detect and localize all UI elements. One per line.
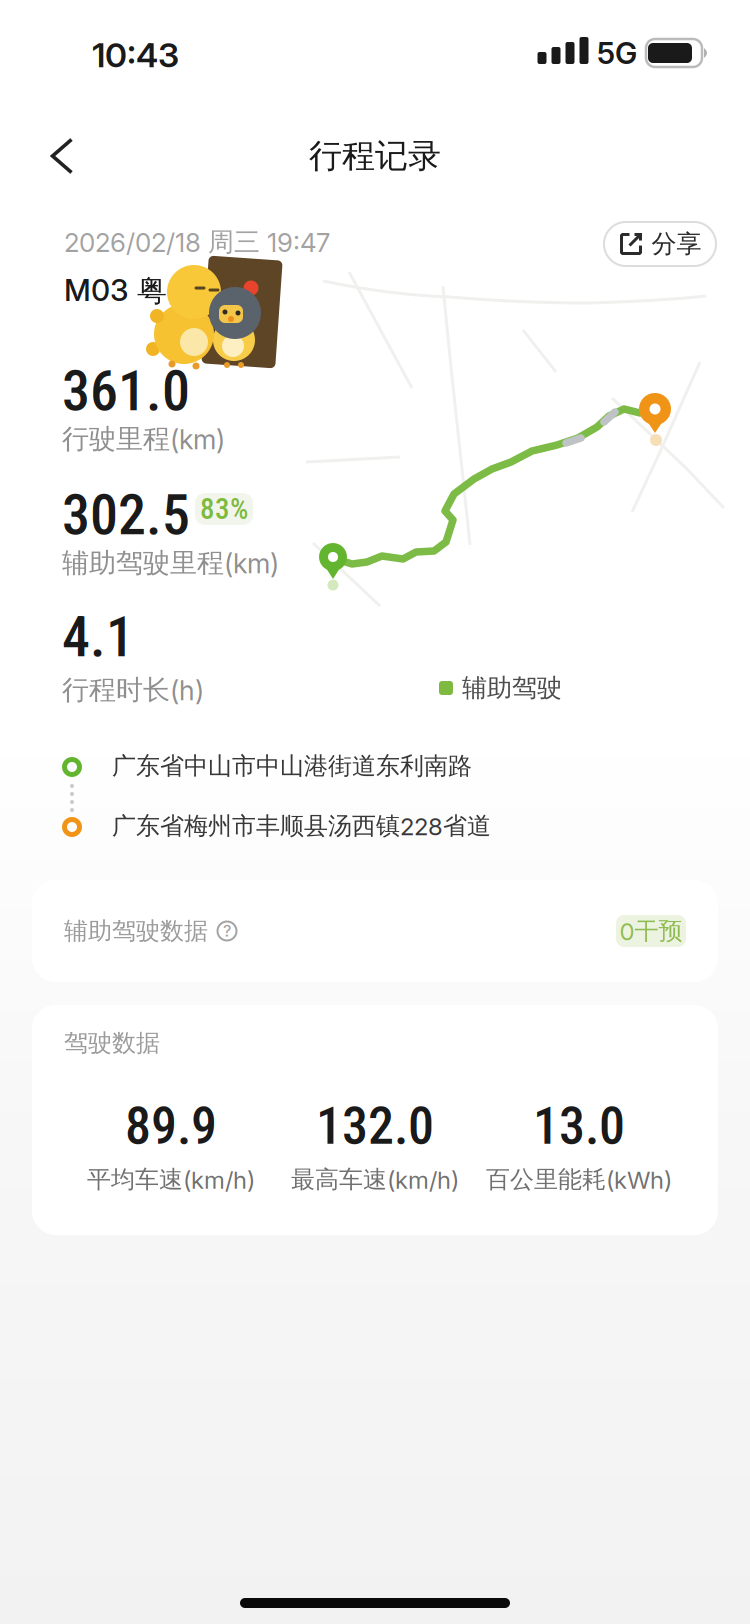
button[interactable]: 分享 [604, 222, 716, 266]
staticText: ? [223, 921, 231, 941]
staticText: 361.0 [62, 358, 190, 424]
staticText: 行驶里程(km) [62, 422, 225, 456]
button[interactable]: 返回 [18, 114, 106, 198]
staticText: 4.1 [62, 604, 134, 670]
staticText: 0干预 [619, 916, 682, 946]
staticText: 辅助驾驶里程(km) [62, 546, 279, 580]
button[interactable]: 辅助驾驶数据 [32, 880, 718, 982]
staticText: M03 粤 [64, 272, 167, 310]
staticText: 行程时长(h) [62, 673, 204, 707]
staticText: 302.5 [62, 482, 190, 548]
staticText: 132.0 [316, 1095, 434, 1156]
staticText: 2026/02/18 周三 19:47 [64, 226, 330, 258]
staticText: 分享 [651, 228, 701, 260]
staticText: 行程记录 [309, 135, 441, 177]
staticText: 驾驶数据 [64, 1028, 160, 1058]
staticText: 最高车速(km/h) [291, 1164, 459, 1195]
staticText: 13.0 [533, 1095, 625, 1156]
staticText: 广东省梅州市丰顺县汤西镇228省道 [112, 811, 491, 841]
staticText: 辅助驾驶 [462, 672, 562, 704]
staticText: 89.9 [125, 1095, 217, 1156]
staticText: 83% [200, 492, 248, 526]
staticText: 10:43 [92, 34, 179, 75]
staticText: 广东省中山市中山港街道东利南路 [112, 751, 472, 781]
staticText: 百公里能耗(kWh) [486, 1164, 672, 1195]
staticText: 辅助驾驶数据 [64, 916, 208, 946]
button[interactable]: 帮助 [216, 920, 238, 942]
staticText: 5G [597, 35, 637, 71]
staticText: 平均车速(km/h) [87, 1164, 255, 1195]
